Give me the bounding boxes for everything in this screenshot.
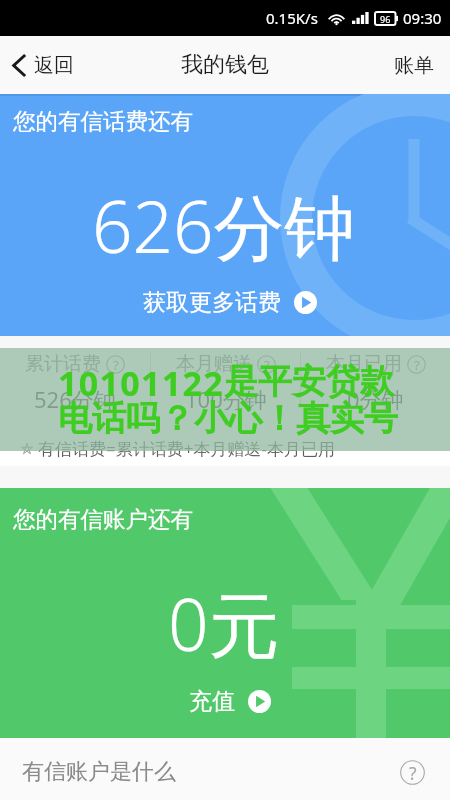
staticText: 0元 [168, 575, 280, 672]
staticText: 本月赠送 [176, 352, 252, 376]
staticText: 获取更多话费 [143, 288, 281, 317]
button[interactable]: 有信账户是什么 [0, 738, 450, 800]
staticText: 有信账户是什么 [22, 758, 176, 786]
button[interactable]: Back [0, 41, 92, 90]
staticText: ? [113, 356, 119, 374]
staticText: 返回 [34, 53, 74, 78]
staticText: 100分钟 [185, 384, 267, 410]
staticText: 电话吗？小心！真实号 [58, 397, 398, 440]
button[interactable]: 您的有信话费还有 [0, 94, 450, 336]
staticText: 充值 [189, 687, 235, 716]
staticText: 09:30 [403, 8, 442, 28]
staticText: 96 [380, 13, 391, 25]
button[interactable]: 您的有信账户还有 [0, 488, 450, 738]
staticText: ? [409, 761, 417, 785]
staticText: 10101122 [58, 360, 224, 406]
staticText: 是平安贷款 [224, 360, 394, 403]
staticText: 我的钱包 [181, 51, 269, 79]
button[interactable]: 本月已用 [301, 348, 450, 410]
button[interactable]: 账单 [376, 41, 450, 90]
staticText: ? [414, 356, 420, 374]
staticText: 累计话费 [25, 352, 101, 376]
staticText: 有信话费=累计话费+本月赠送-本月已用 [38, 437, 335, 460]
other: Back [13, 55, 25, 76]
staticText: 0.15K/s [266, 8, 318, 28]
button[interactable]: 充值 [183, 681, 277, 722]
staticText: ? [264, 356, 270, 374]
staticText: 0分钟 [347, 384, 404, 410]
staticText: 您的有信话费还有 [13, 107, 193, 135]
button[interactable]: 获取更多话费 [137, 282, 323, 323]
staticText: 626分钟 [92, 177, 356, 274]
staticText: 526分钟 [34, 384, 116, 410]
button[interactable]: 累计话费 [0, 348, 150, 410]
other: Help [400, 760, 425, 785]
staticText: 本月已用 [326, 352, 402, 376]
staticText: 账单 [394, 53, 434, 78]
button[interactable]: 本月赠送 [151, 348, 300, 410]
staticText: 您的有信账户还有 [13, 505, 193, 533]
